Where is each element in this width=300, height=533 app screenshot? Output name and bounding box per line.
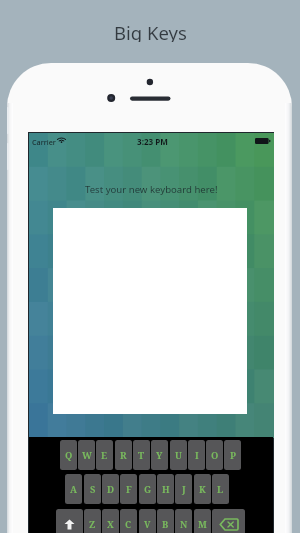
staticText: V: [144, 518, 151, 531]
staticText: Big Keys: [114, 20, 187, 42]
staticText: P: [230, 449, 236, 462]
button[interactable]: Y: [151, 440, 168, 470]
button[interactable]: H: [157, 474, 174, 504]
staticText: C: [125, 518, 132, 531]
button[interactable]: W: [78, 440, 95, 470]
button[interactable]: A: [65, 474, 82, 504]
staticText: X: [107, 518, 114, 531]
staticText: J: [182, 483, 186, 496]
staticText: T: [138, 449, 145, 462]
button[interactable]: G: [139, 474, 156, 504]
staticText: M: [198, 518, 207, 531]
staticText: R: [120, 449, 127, 462]
button[interactable]: S: [84, 474, 101, 504]
button[interactable]: L: [212, 474, 229, 504]
staticText: H: [162, 483, 170, 496]
staticText: S: [90, 483, 96, 496]
staticText: F: [126, 483, 132, 496]
staticText: Y: [156, 449, 163, 462]
button[interactable]: J: [175, 474, 192, 504]
button[interactable]: E: [96, 440, 113, 470]
staticText: Q: [65, 449, 73, 462]
button[interactable]: D: [102, 474, 119, 504]
staticText: Test your new keyboard here!: [85, 183, 218, 196]
staticText: K: [199, 483, 206, 496]
button[interactable]: U: [170, 440, 187, 470]
button[interactable]: B: [157, 509, 174, 533]
staticText: G: [144, 483, 152, 496]
button[interactable]: K: [194, 474, 211, 504]
button[interactable]: Q: [60, 440, 77, 470]
button[interactable]: N: [175, 509, 192, 533]
button[interactable]: T: [133, 440, 150, 470]
button[interactable]: V: [139, 509, 156, 533]
button[interactable]: F: [120, 474, 137, 504]
button[interactable]: I: [188, 440, 205, 470]
button[interactable]: Z: [84, 509, 101, 533]
staticText: I: [195, 449, 199, 462]
button[interactable]: X: [102, 509, 119, 533]
staticText: E: [101, 449, 108, 462]
staticText: 3:23 PM: [137, 136, 168, 147]
staticText: W: [82, 449, 92, 462]
staticText: B: [162, 518, 169, 531]
button[interactable]: P: [224, 440, 241, 470]
staticText: D: [107, 483, 115, 496]
staticText: Z: [89, 518, 96, 531]
staticText: A: [70, 483, 78, 496]
staticText: N: [180, 518, 188, 531]
button[interactable]: C: [120, 509, 137, 533]
staticText: L: [217, 483, 224, 496]
button[interactable]: O: [206, 440, 223, 470]
button[interactable]: Backspace: [212, 509, 245, 533]
button[interactable]: M: [194, 509, 211, 533]
button[interactable]: R: [115, 440, 132, 470]
button[interactable]: Shift: [56, 509, 83, 533]
staticText: O: [211, 449, 219, 462]
staticText: U: [175, 449, 182, 462]
staticText: Carrier: [32, 137, 56, 147]
